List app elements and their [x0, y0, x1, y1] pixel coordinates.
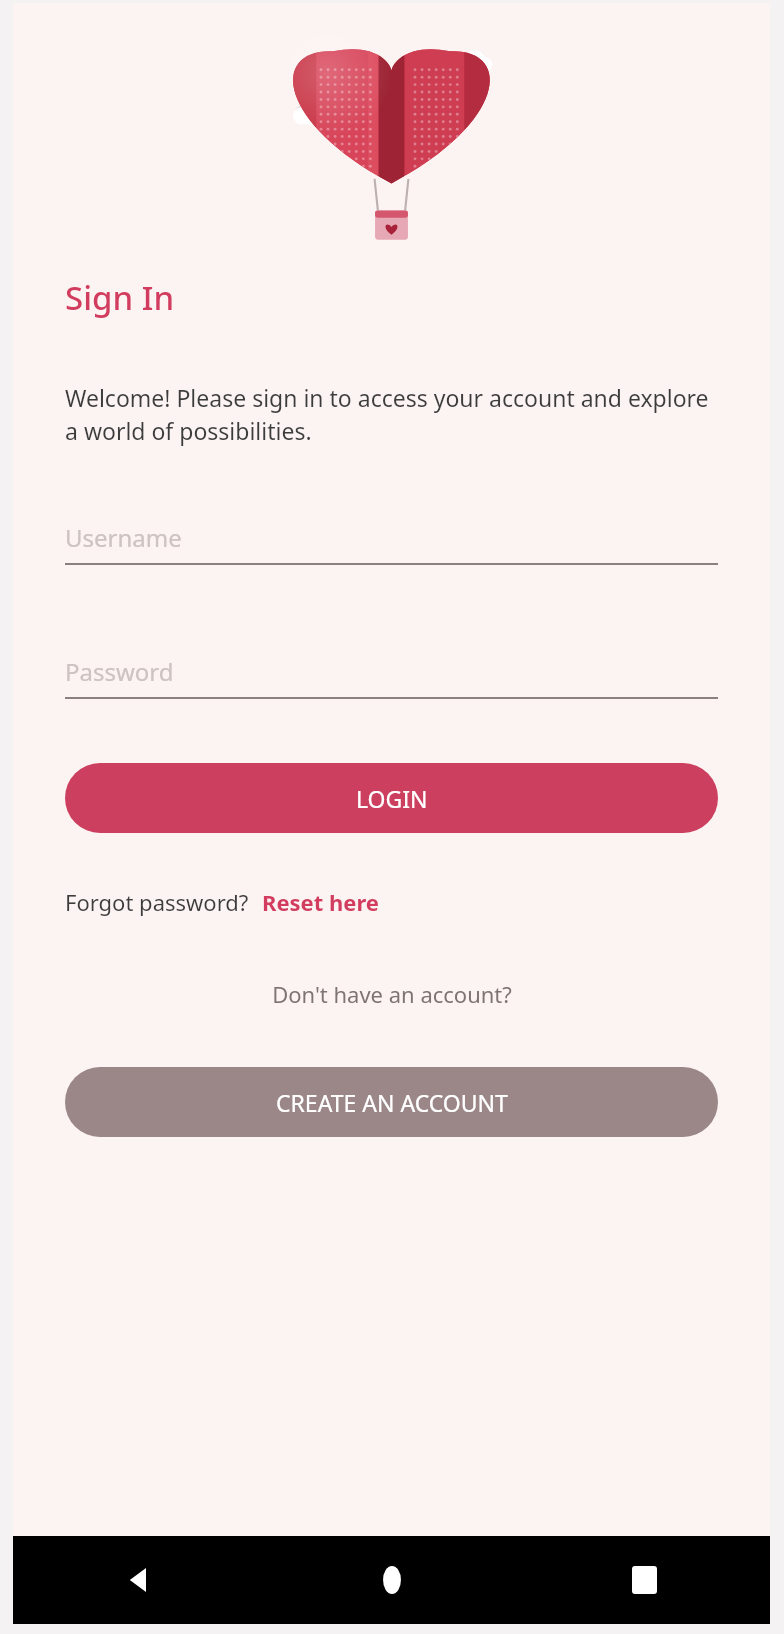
button[interactable]: Recent apps — [518, 1536, 770, 1624]
button[interactable]: CREATE AN ACCOUNT — [65, 1067, 718, 1137]
button[interactable]: Home — [266, 1536, 518, 1624]
staticText: Password — [65, 655, 174, 688]
staticText: Forgot password? — [65, 887, 249, 917]
staticText: Welcome! Please sign in to access your a… — [65, 382, 718, 447]
staticText: CREATE AN ACCOUNT — [276, 1087, 508, 1118]
button[interactable]: Reset here — [262, 887, 379, 917]
button[interactable]: Password — [65, 655, 718, 699]
staticText: LOGIN — [356, 783, 428, 814]
staticText: Sign In — [65, 275, 175, 320]
button[interactable]: Username — [65, 521, 718, 565]
button[interactable]: Back — [13, 1536, 266, 1624]
staticText: Reset here — [262, 887, 379, 917]
button[interactable]: LOGIN — [65, 763, 718, 833]
staticText: Don't have an account? — [272, 979, 512, 1009]
staticText: Username — [65, 521, 182, 554]
